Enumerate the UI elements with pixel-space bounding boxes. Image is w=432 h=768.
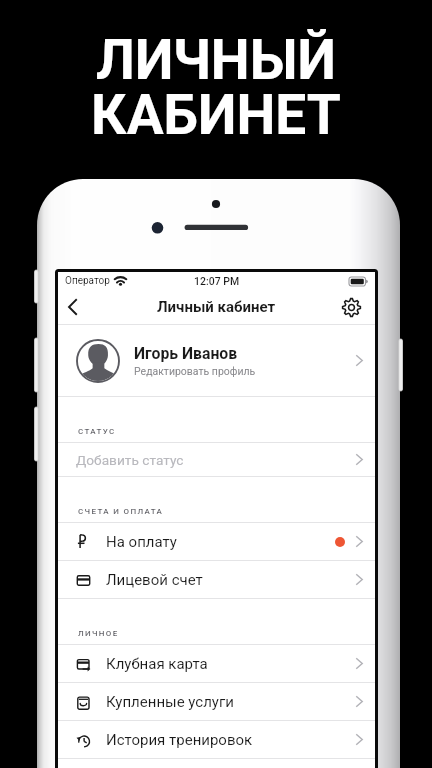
staticText: 12:07 PM bbox=[194, 275, 240, 287]
button[interactable]: Назад bbox=[58, 293, 86, 321]
button[interactable]: Настройки bbox=[337, 293, 366, 322]
staticText: КАБИНЕТ bbox=[91, 83, 341, 147]
staticText: СТАТУС bbox=[78, 427, 116, 436]
staticText: Личный кабинет bbox=[157, 298, 276, 316]
staticText: Добавить статус bbox=[76, 452, 356, 468]
staticText: ЛИЧНОЕ bbox=[78, 629, 119, 638]
staticText: На оплату bbox=[106, 533, 335, 551]
staticText: Редактировать профиль bbox=[134, 365, 256, 377]
button[interactable]: Игорь Иванов bbox=[58, 325, 375, 396]
staticText: Клубная карта bbox=[106, 655, 356, 673]
button[interactable]: Лицевой счет bbox=[58, 561, 375, 598]
staticText: История тренировок bbox=[106, 731, 356, 749]
staticText: Лицевой счет bbox=[106, 571, 356, 589]
staticText: ЛИЧНЫЙ bbox=[96, 28, 336, 92]
button[interactable]: История тренировок bbox=[58, 721, 375, 758]
staticText: Игорь Иванов bbox=[134, 344, 238, 363]
staticText: СЧЕТА И ОПЛАТА bbox=[78, 507, 164, 516]
button[interactable]: Купленные услуги bbox=[58, 683, 375, 720]
staticText: Купленные услуги bbox=[106, 693, 356, 711]
staticText: Оператор bbox=[65, 275, 110, 287]
button[interactable]: Добавить статус bbox=[58, 443, 375, 476]
button[interactable]: Клубная карта bbox=[58, 645, 375, 682]
button[interactable]: На оплату bbox=[58, 523, 375, 560]
